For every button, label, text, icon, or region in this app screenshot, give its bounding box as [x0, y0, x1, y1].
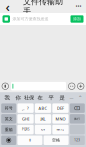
staticText: 重输 [5, 127, 13, 132]
button[interactable]: Emoji [68, 83, 75, 89]
staticText: 添加可方便查找发送 [12, 16, 48, 21]
staticText: ,。? [22, 105, 29, 111]
staticText: 添加 [73, 16, 81, 21]
button[interactable]: Divider [67, 95, 75, 100]
staticText: TUV [40, 128, 45, 131]
staticText: ‡ [29, 138, 31, 143]
button[interactable]: 空格 [44, 135, 69, 145]
staticText: ⌃ [78, 95, 82, 101]
staticText: — [69, 95, 73, 100]
staticText: × [76, 106, 78, 110]
staticText: DEF [57, 105, 64, 111]
staticText: 平 [48, 94, 53, 101]
staticText: 是 [59, 94, 64, 101]
staticText: GHI [22, 116, 29, 121]
staticText: MNO [55, 116, 65, 121]
button[interactable]: DEF [52, 103, 69, 113]
staticText: 社保 [24, 94, 34, 101]
staticText: WXYZ [56, 128, 64, 131]
button[interactable]: 英文 [1, 114, 16, 124]
button[interactable]: Back [1, 0, 14, 13]
button[interactable]: Delete [70, 103, 85, 113]
staticText: 符号 [5, 106, 13, 111]
button[interactable]: 是 [56, 94, 67, 101]
button[interactable]: More [72, 0, 85, 13]
button[interactable]: ABC [35, 103, 51, 113]
button[interactable]: 重输 [1, 125, 16, 134]
button[interactable]: TUV [35, 125, 51, 134]
button[interactable]: More options [77, 83, 84, 89]
button[interactable]: 你 [12, 94, 23, 101]
button[interactable]: WXYZ [52, 125, 69, 134]
button[interactable]: 平 [45, 94, 56, 101]
staticText: 123 [74, 138, 80, 142]
staticText: ‹ [5, 0, 9, 15]
staticText: ••• [75, 3, 81, 10]
button[interactable]: ,。? [17, 103, 34, 113]
staticText: ABC [38, 105, 47, 111]
button[interactable]: 符号 [1, 103, 16, 113]
staticText: 在 [37, 94, 42, 101]
button[interactable]: 换行 [70, 114, 85, 124]
button[interactable]: 添加 [70, 15, 83, 23]
button[interactable]: PQRS [17, 125, 34, 134]
staticText: 英文 [5, 116, 13, 121]
button[interactable]: MNO [52, 114, 69, 124]
button[interactable]: 123 [70, 135, 85, 145]
button[interactable]: JKL [35, 114, 51, 124]
button[interactable]: 在 [34, 94, 45, 101]
staticText: PQRS [22, 128, 29, 131]
button[interactable]: Voice input [2, 83, 8, 89]
staticText: 我 [4, 94, 9, 101]
staticText: 你 [15, 94, 20, 101]
button[interactable]: GHI [17, 114, 34, 124]
staticText: 空格 [52, 138, 60, 143]
button[interactable]: Symbols [17, 135, 42, 145]
staticText: JKL [40, 116, 45, 121]
button[interactable]: 我 [1, 94, 12, 101]
button[interactable]: Switch keyboard [1, 135, 16, 145]
button[interactable]: 社保 [23, 94, 34, 101]
staticText: 文件传输助手 [23, 0, 63, 16]
staticText: 换行 [74, 117, 80, 120]
button[interactable]: Show more candidates [75, 95, 84, 101]
